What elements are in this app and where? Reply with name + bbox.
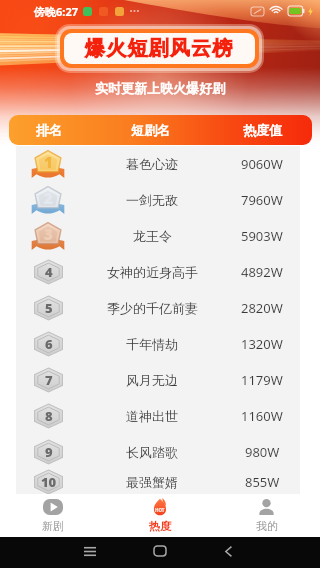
staticText: 1320W [241, 335, 283, 353]
button[interactable]: 5 [16, 290, 300, 326]
button[interactable]: 3 [16, 218, 300, 254]
staticText: 季少的千亿前妻 [107, 300, 198, 316]
button[interactable]: 7 [16, 362, 300, 398]
button[interactable]: 1 [16, 146, 300, 182]
staticText: 2 [44, 188, 53, 208]
button[interactable]: 新剧 [0, 494, 106, 537]
staticText: 7960W [241, 191, 283, 209]
staticText: 3 [44, 224, 53, 244]
staticText: 热度值 [243, 122, 282, 138]
button[interactable]: Back [215, 538, 241, 564]
staticText: 980W [245, 443, 280, 461]
button[interactable]: 我的 [213, 494, 320, 537]
staticText: HOT [155, 507, 165, 513]
staticText: 9060W [241, 155, 283, 173]
staticText: 道神出世 [126, 408, 178, 424]
staticText: 7 [45, 371, 53, 389]
button[interactable]: 6 [16, 326, 300, 362]
staticText: 短剧名 [131, 122, 170, 138]
staticText: 排名 [36, 122, 62, 138]
staticText: 8 [45, 407, 53, 425]
staticText: 风月无边 [126, 372, 178, 388]
staticText: 9 [45, 443, 53, 461]
staticText: 4892W [241, 263, 283, 281]
staticText: 6 [45, 335, 53, 353]
staticText: 1179W [241, 371, 283, 389]
staticText: 傍晚6:27 [34, 4, 78, 19]
staticText: 最强蟹婿 [126, 474, 178, 490]
button[interactable]: 9 [16, 434, 300, 470]
staticText: 暮色心迹 [126, 156, 178, 172]
staticText: 855W [245, 473, 280, 491]
staticText: 2820W [241, 299, 283, 317]
staticText: 女神的近身高手 [107, 264, 198, 280]
staticText: 爆火短剧风云榜 [85, 36, 234, 61]
staticText: 热度 [149, 519, 171, 533]
button[interactable]: 10 [16, 470, 300, 494]
staticText: 1 [44, 152, 53, 172]
staticText: 龙王令 [133, 228, 172, 244]
staticText: 10 [41, 473, 57, 491]
staticText: 一剑无敌 [126, 192, 178, 208]
button[interactable]: HOT [106, 494, 213, 537]
staticText: 千年情劫 [126, 336, 178, 352]
staticText: 我的 [256, 519, 278, 533]
staticText: 实时更新上映火爆好剧 [0, 80, 320, 96]
staticText: 1160W [241, 407, 283, 425]
staticText: 4 [45, 263, 53, 281]
staticText: 长风踏歌 [126, 444, 178, 460]
button[interactable]: 2 [16, 182, 300, 218]
button[interactable]: Recent apps [77, 538, 103, 564]
staticText: 5 [45, 299, 53, 317]
button[interactable]: 8 [16, 398, 300, 434]
button[interactable]: 4 [16, 254, 300, 290]
staticText: 5903W [241, 227, 283, 245]
staticText: 新剧 [42, 519, 64, 533]
button[interactable]: Home [147, 538, 173, 564]
